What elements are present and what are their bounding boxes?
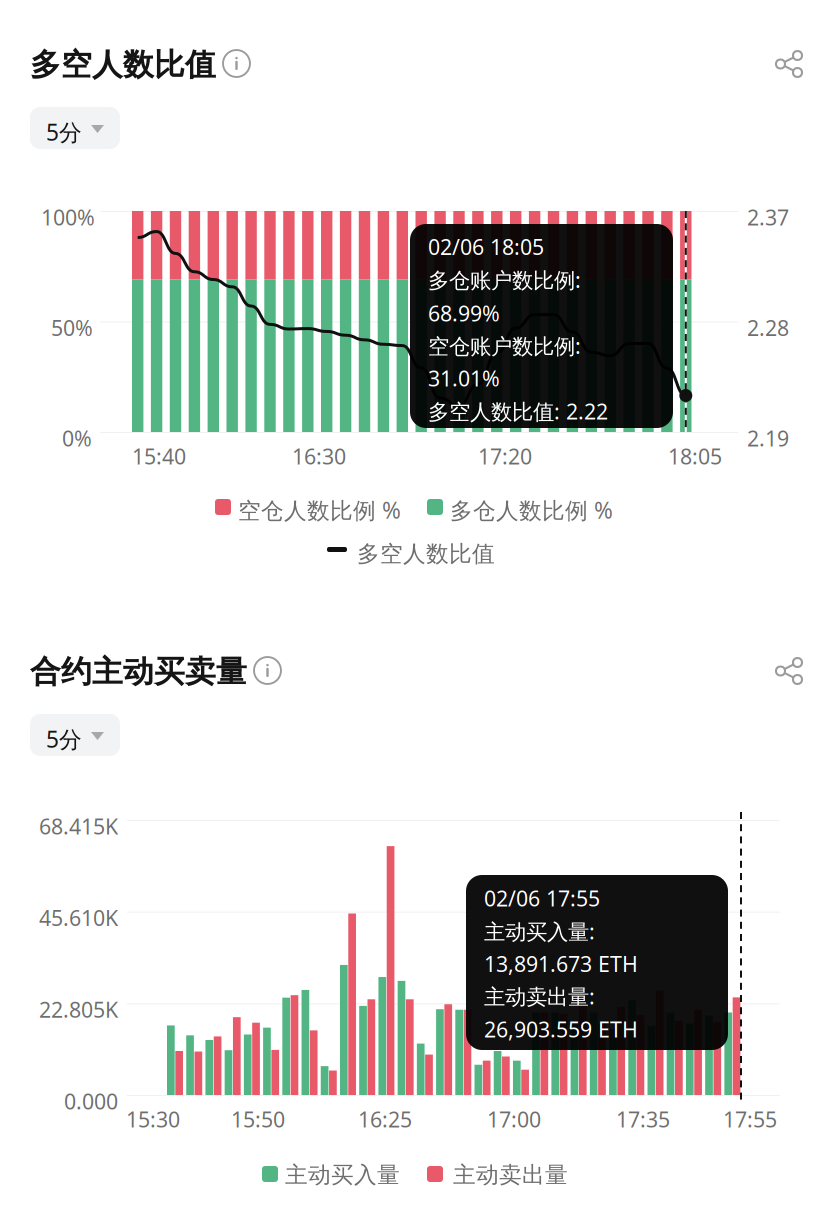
staticText: 17:35	[616, 1105, 670, 1133]
staticText: 2.37	[747, 203, 789, 231]
staticText: 0.000	[64, 1087, 118, 1115]
staticText: 50%	[51, 313, 93, 342]
staticText: 合约主动买卖量	[30, 653, 247, 691]
staticText: 18:05	[668, 442, 722, 470]
staticText: 主动卖出量	[453, 1161, 568, 1189]
staticText: 02/06 17:55	[484, 884, 600, 912]
staticText: 13,891.673 ETH	[484, 949, 638, 978]
staticText: 多仓人数比例 %	[450, 495, 613, 525]
staticText: 68.415K	[39, 812, 118, 840]
staticText: 多空人数比值	[357, 540, 495, 568]
staticText: 15:30	[126, 1105, 180, 1133]
staticText: 22.805K	[39, 995, 118, 1024]
button[interactable]: Share	[776, 51, 802, 77]
staticText: 15:40	[132, 442, 186, 470]
staticText: 5分	[46, 724, 82, 754]
staticText: 2.19	[747, 424, 789, 452]
staticText: 31.01%	[428, 364, 500, 392]
staticText: 0%	[62, 424, 92, 452]
staticText: 多空人数比值	[30, 46, 216, 84]
button[interactable]: 5分	[30, 107, 120, 149]
staticText: 16:25	[358, 1105, 412, 1133]
button[interactable]: Share	[776, 658, 802, 684]
staticText: 空仓账户数比例:	[428, 331, 581, 360]
staticText: 17:00	[487, 1105, 541, 1133]
staticText: 16:30	[292, 442, 346, 470]
staticText: 15:50	[231, 1105, 285, 1133]
button[interactable]: 5分	[30, 714, 120, 756]
staticText: 02/06 18:05	[428, 232, 544, 261]
staticText: 5分	[46, 117, 82, 147]
staticText: 多仓账户数比例:	[428, 265, 581, 294]
staticText: 2.28	[747, 313, 789, 342]
staticText: 68.99%	[428, 299, 500, 327]
staticText: 17:20	[478, 442, 532, 470]
staticText: 45.610K	[39, 904, 118, 932]
staticText: 空仓人数比例 %	[238, 495, 401, 525]
staticText: 多空人数比值: 2.22	[428, 397, 608, 425]
staticText: 主动买入量:	[484, 917, 595, 945]
staticText: 主动卖出量:	[484, 982, 595, 1010]
staticText: 17:55	[723, 1105, 777, 1133]
staticText: 26,903.559 ETH	[484, 1015, 638, 1043]
staticText: 100%	[41, 203, 95, 231]
staticText: 主动买入量	[285, 1161, 400, 1189]
